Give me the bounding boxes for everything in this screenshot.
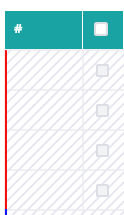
button[interactable]: Select row xyxy=(96,144,109,157)
button[interactable]: Select row xyxy=(96,184,109,197)
button[interactable]: # xyxy=(5,11,82,49)
button[interactable]: Select row xyxy=(0,130,124,170)
button[interactable]: Select row xyxy=(0,50,124,90)
button[interactable]: Select all xyxy=(83,11,123,49)
button[interactable]: Select row xyxy=(96,104,109,117)
button[interactable]: Select row xyxy=(96,64,109,77)
staticText: # xyxy=(14,19,23,37)
button[interactable]: Select row xyxy=(0,90,124,130)
button[interactable]: Select row xyxy=(0,170,124,210)
